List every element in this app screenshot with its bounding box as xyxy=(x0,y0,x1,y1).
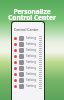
button[interactable]: Remove xyxy=(12,83,44,89)
button[interactable]: Remove xyxy=(12,47,44,53)
other: Remove xyxy=(14,37,17,40)
button[interactable]: Remove xyxy=(12,65,44,71)
staticText: Setting xyxy=(26,54,36,58)
staticText: Setting xyxy=(26,42,36,46)
other: Remove xyxy=(14,43,17,46)
staticText: Setting xyxy=(26,72,36,76)
other: Remove xyxy=(14,79,17,82)
button[interactable]: Remove xyxy=(12,35,44,41)
other: Remove xyxy=(14,49,17,52)
button[interactable]: Remove xyxy=(12,41,44,47)
staticText: Setting xyxy=(26,66,36,70)
other: Remove xyxy=(14,85,17,88)
other: Remove xyxy=(14,73,17,76)
staticText: Setting xyxy=(26,78,36,82)
staticText: Setting xyxy=(26,36,36,40)
staticText: Setting xyxy=(26,60,36,64)
staticText: Setting xyxy=(26,84,36,88)
other: Remove xyxy=(14,55,17,58)
button[interactable]: Remove xyxy=(12,59,44,65)
staticText: Control Center xyxy=(14,27,39,32)
button[interactable]: Remove xyxy=(12,77,44,83)
staticText: Setting xyxy=(26,48,36,52)
other: Remove xyxy=(14,61,17,64)
other: Remove xyxy=(14,67,17,70)
button[interactable]: Remove xyxy=(12,71,44,77)
button[interactable]: Remove xyxy=(12,53,44,59)
staticText: Personalize Control Center xyxy=(0,7,64,22)
